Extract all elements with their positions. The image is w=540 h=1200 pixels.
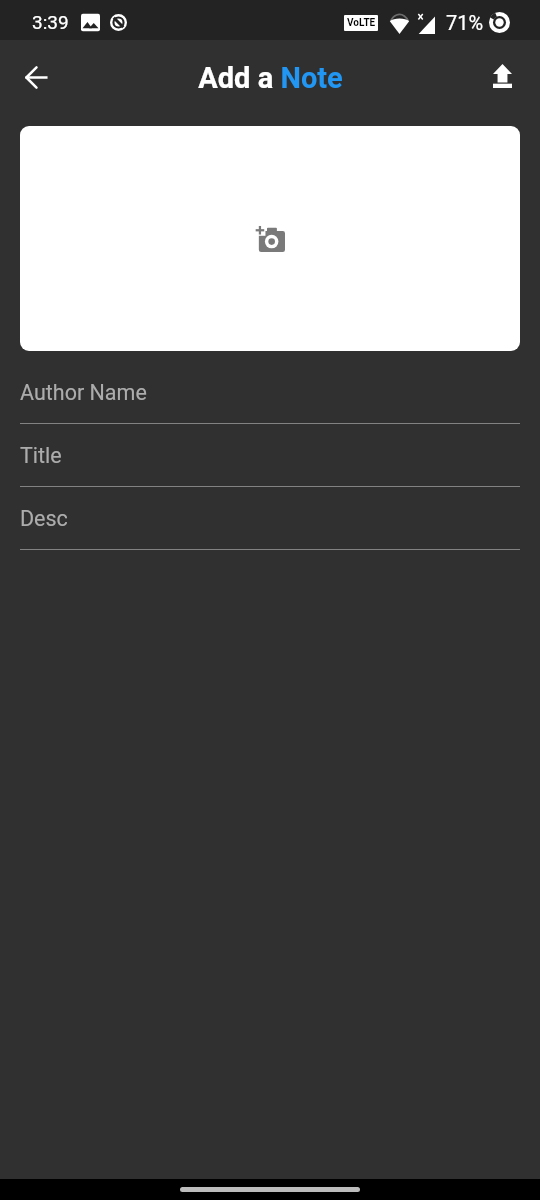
staticText: 71% xyxy=(446,11,484,34)
staticText: Desc xyxy=(20,506,68,531)
staticText: Author Name xyxy=(20,380,147,405)
button[interactable]: Back xyxy=(12,52,60,100)
staticText: 3:39 xyxy=(32,11,69,33)
staticText: Title xyxy=(20,443,62,468)
button[interactable]: Author Name xyxy=(20,377,520,440)
staticText: VoLTE xyxy=(347,17,376,29)
button[interactable]: Add photo xyxy=(20,126,520,351)
button[interactable]: Upload xyxy=(478,52,526,100)
button[interactable]: Title xyxy=(20,440,520,503)
button[interactable]: Desc xyxy=(20,503,520,566)
button[interactable]: Home xyxy=(180,1187,360,1192)
staticText: Add a Note xyxy=(198,61,343,95)
